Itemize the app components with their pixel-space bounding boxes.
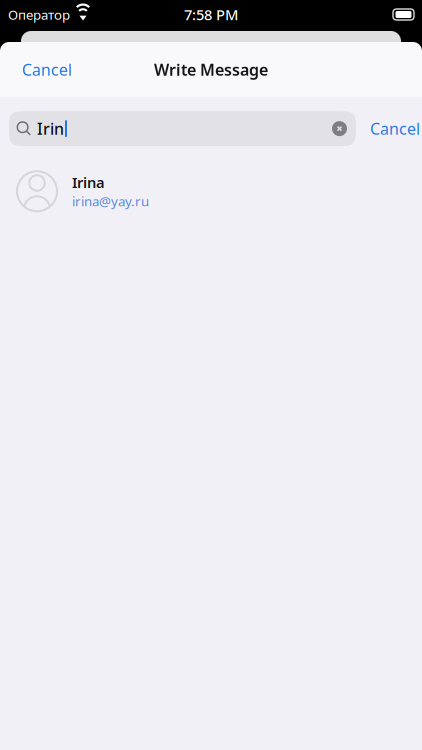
staticText: 7:58 PM [184, 5, 238, 24]
button[interactable]: Irina [0, 168, 422, 214]
staticText: Irina [72, 173, 105, 192]
staticText: Cancel [370, 118, 420, 139]
staticText: Irin [37, 118, 64, 139]
staticText: irina@yay.ru [72, 192, 149, 210]
staticText: Write Message [154, 59, 268, 80]
button[interactable]: Clear text [323, 112, 356, 145]
button[interactable]: Cancel [356, 110, 422, 147]
staticText: Оператор [8, 6, 70, 23]
staticText: Cancel [22, 59, 72, 80]
button[interactable]: Cancel [17, 50, 77, 89]
